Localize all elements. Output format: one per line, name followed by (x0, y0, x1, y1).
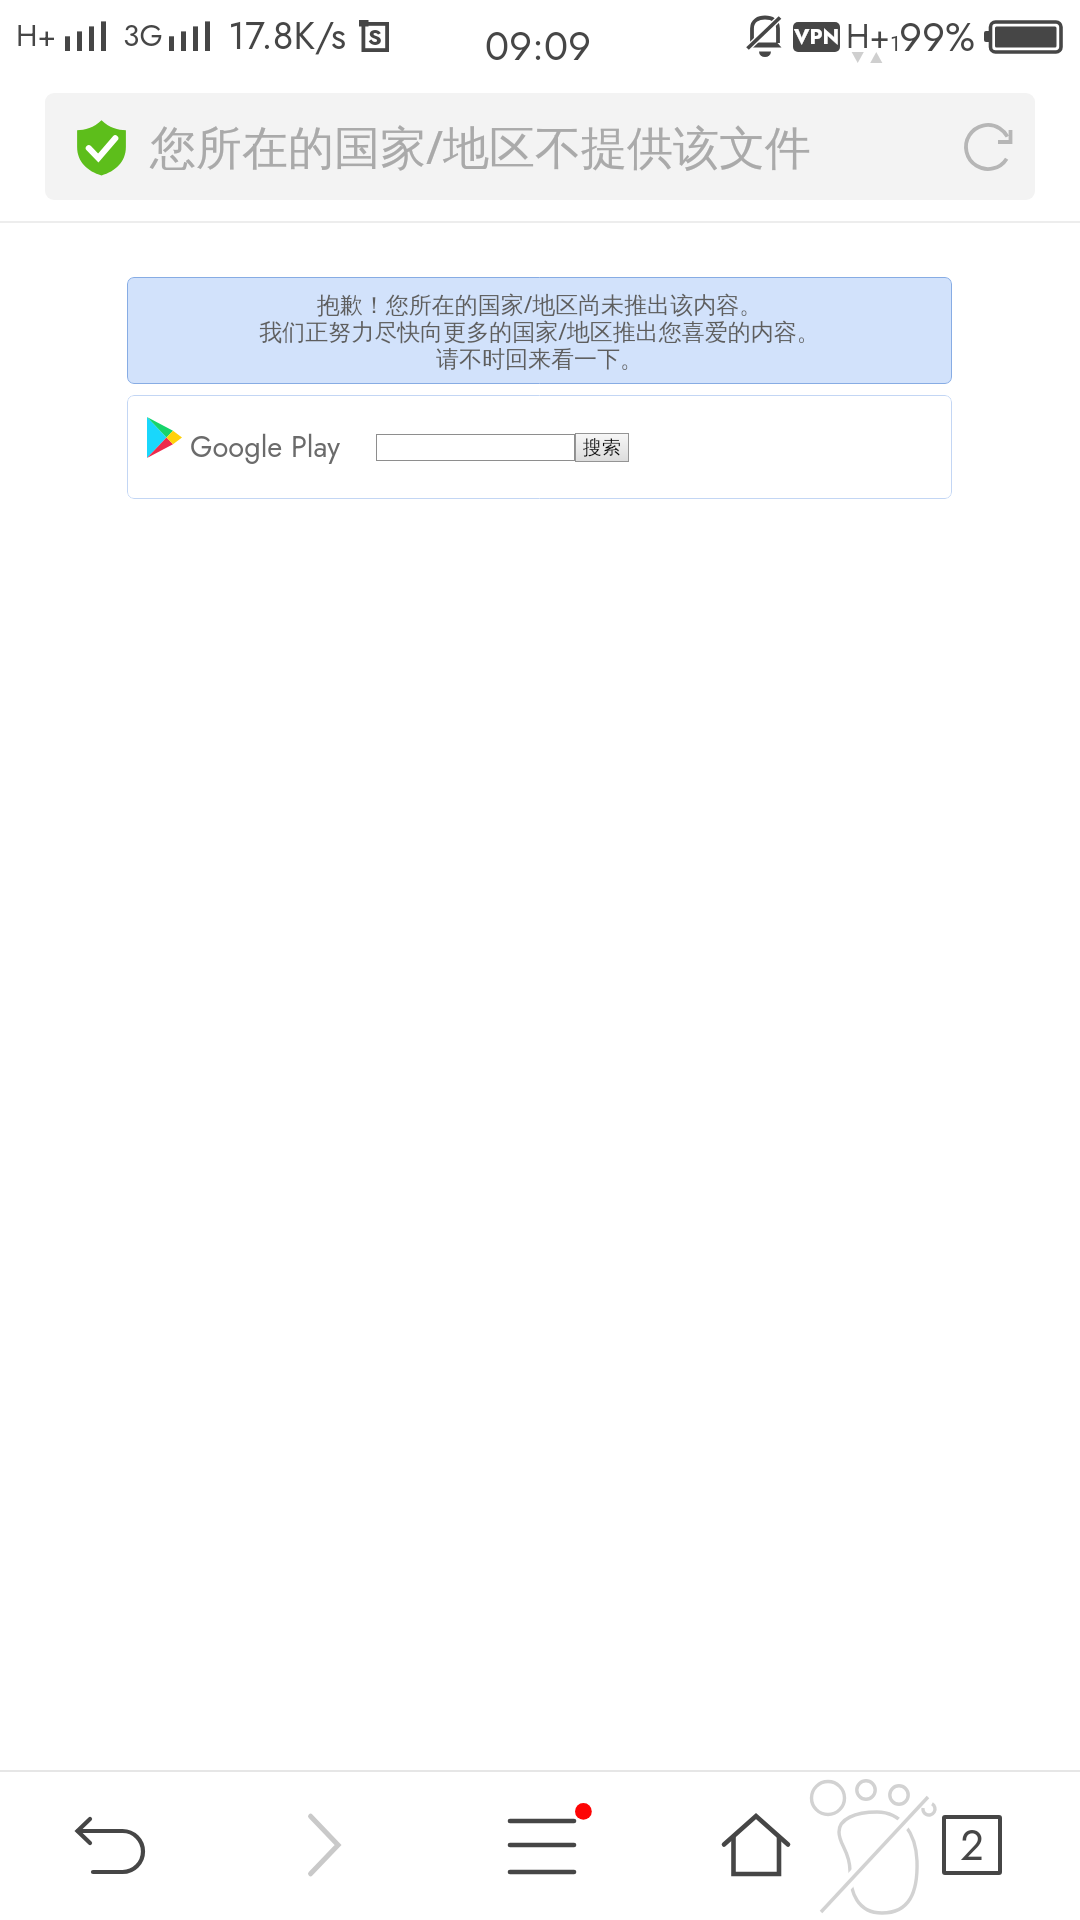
button[interactable]: Forward (216, 1770, 432, 1920)
staticText: 抱歉！您所在的国家/地区尚未推出该内容。 我们正努力尽快向更多的国家/地区推出您… (259, 288, 820, 374)
staticText: 搜索 (583, 436, 621, 460)
staticText: 3G (123, 14, 163, 57)
staticText: 09:09 (485, 17, 592, 75)
staticText: 99% (899, 8, 976, 66)
button[interactable]: Home (648, 1770, 864, 1920)
staticText: S (368, 21, 382, 53)
staticText: H+ (16, 14, 56, 57)
button[interactable]: 您所在的国家/地区不提供该文件 (45, 93, 1035, 200)
button[interactable]: Menu (432, 1770, 648, 1920)
button[interactable]: Tabs (864, 1770, 1080, 1920)
staticText: 您所在的国家/地区不提供该文件 (150, 115, 943, 178)
staticText: H+ (846, 13, 890, 61)
button[interactable]: 搜索 (575, 433, 629, 462)
staticText: Google Play (190, 426, 341, 468)
button[interactable]: Refresh (943, 102, 1033, 192)
staticText: 2 (960, 1815, 984, 1875)
staticText: 17.8K/s (228, 8, 346, 63)
staticText: VPN (794, 22, 840, 52)
button[interactable] (376, 434, 575, 461)
button[interactable]: Back (0, 1770, 216, 1920)
